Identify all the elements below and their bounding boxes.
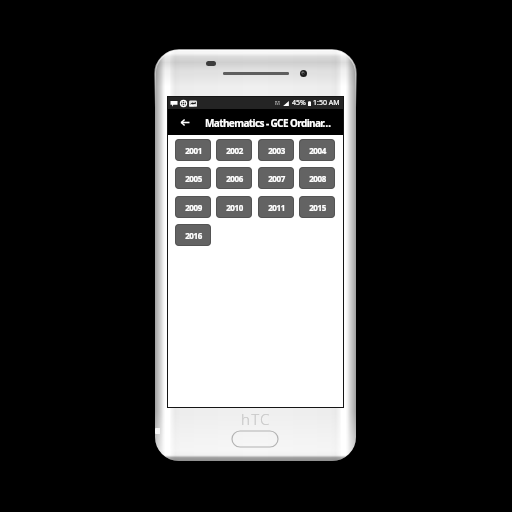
button[interactable]: 2001 (175, 139, 211, 161)
button[interactable]: 2007 (258, 167, 294, 189)
staticText: 1:50 AM (313, 98, 340, 108)
button[interactable]: 2015 (299, 196, 335, 218)
button[interactable]: 2008 (299, 167, 335, 189)
staticText: 2002 (226, 145, 243, 156)
staticText: 2008 (309, 173, 326, 184)
staticText: 2007 (268, 173, 285, 184)
button[interactable]: 2005 (175, 167, 211, 189)
button[interactable]: 2009 (175, 196, 211, 218)
staticText: 2004 (309, 145, 326, 156)
button[interactable]: 2006 (216, 167, 252, 189)
staticText: Mathematics - GCE Ordinar… (205, 116, 331, 130)
button[interactable]: 2016 (175, 224, 211, 246)
staticText: 2003 (268, 145, 285, 156)
button[interactable]: 2011 (258, 196, 294, 218)
staticText: 2016 (185, 230, 202, 241)
staticText: 2010 (226, 202, 243, 213)
staticText: 2011 (268, 202, 285, 213)
staticText: 2001 (185, 145, 202, 156)
staticText: 2015 (309, 202, 326, 213)
staticText: hTC (241, 409, 271, 425)
staticText: 2005 (185, 173, 202, 184)
staticText: 45% (292, 98, 306, 108)
button[interactable]: 2003 (258, 139, 294, 161)
button[interactable]: 2002 (216, 139, 252, 161)
button[interactable]: 2010 (216, 196, 252, 218)
button[interactable]: 2004 (299, 139, 335, 161)
button[interactable]: Back (174, 109, 196, 135)
staticText: 2006 (226, 173, 243, 184)
staticText: 2009 (185, 202, 202, 213)
